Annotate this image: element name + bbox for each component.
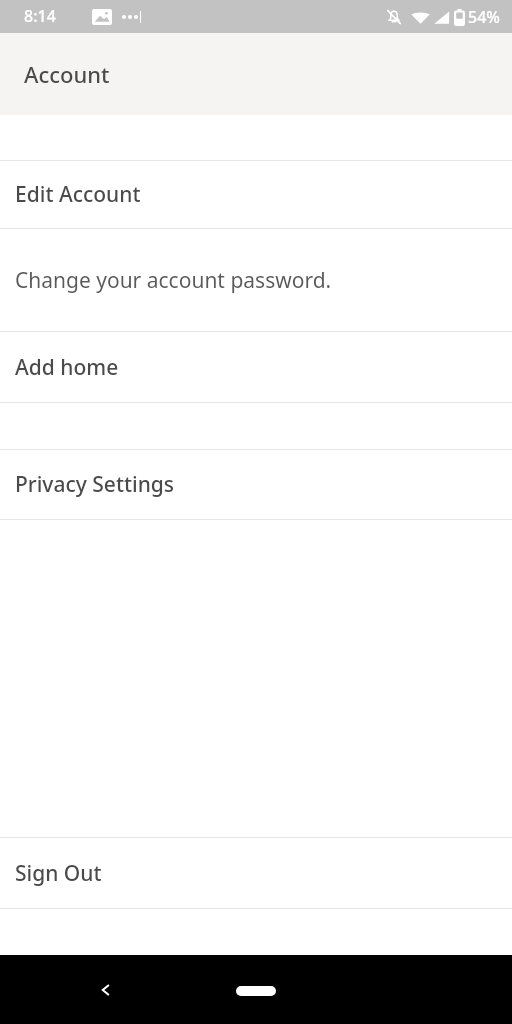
staticText: 54% (468, 6, 500, 28)
button[interactable]: Privacy Settings (0, 450, 512, 519)
staticText: Edit Account (15, 180, 141, 209)
button[interactable]: Sign Out (0, 838, 512, 908)
staticText: 8:14 (24, 5, 56, 27)
button[interactable]: Edit Account (0, 161, 512, 228)
button[interactable]: Change your account password. (0, 229, 512, 331)
staticText: Add home (15, 353, 119, 382)
staticText: Change your account password. (15, 266, 332, 295)
staticText: Account (24, 59, 110, 89)
staticText: Sign Out (15, 859, 102, 888)
staticText: Privacy Settings (15, 470, 175, 499)
button[interactable]: Home (236, 986, 276, 996)
button[interactable]: Back (98, 982, 114, 998)
button[interactable]: Add home (0, 332, 512, 402)
